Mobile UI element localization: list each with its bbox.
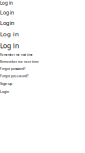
staticText: Log in [0, 41, 19, 50]
staticText: Sign up [0, 81, 12, 86]
staticText: Login [0, 89, 9, 94]
staticText: Log in [0, 9, 14, 16]
staticText: Log in [0, 0, 13, 6]
staticText: Forgot password? [0, 67, 25, 71]
staticText: Remember me next time [0, 60, 39, 64]
staticText: Log in [0, 19, 14, 27]
staticText: Forgot password? [0, 74, 28, 78]
staticText: Remember me next time [0, 53, 33, 57]
staticText: Log in [0, 30, 19, 38]
